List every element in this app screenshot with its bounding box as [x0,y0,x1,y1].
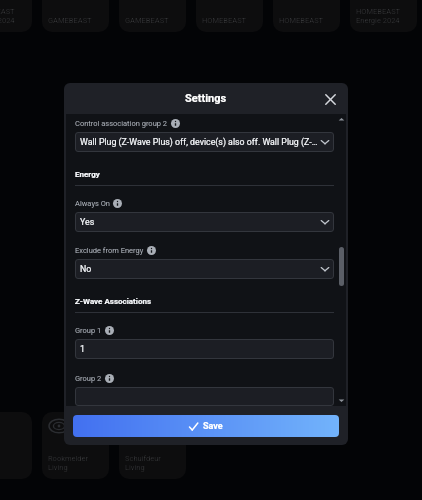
button[interactable]: Close [320,89,340,109]
staticText: Energy [75,170,100,179]
staticText: No [80,264,318,274]
staticText: Save [203,421,223,432]
staticText: Z-Wave Associations [75,297,152,306]
button[interactable]: GAMEBEAST [42,0,109,32]
staticText: Wall Plug (Z-Wave Plus) off, device(s) a… [80,137,318,147]
staticText: Energie 2024 [356,16,400,25]
staticText: Living [48,463,68,472]
staticText: GAMEBEAST [48,16,92,25]
staticText: Energie 2024 [0,16,15,25]
staticText: HOMEBEAST [279,16,324,25]
staticText: HOMEBEAST [356,7,401,16]
button[interactable]: Scroll [337,114,346,406]
staticText: Group 1 [75,326,102,335]
button[interactable]: HOMEBEAST [196,0,263,32]
staticText: GAMEBEAST [0,7,15,16]
button[interactable]: Save [73,415,339,437]
button[interactable] [75,387,334,406]
staticText: Living [125,463,145,472]
staticText: Exclude from Energy [75,246,144,255]
button[interactable]: HOMEBEAST [273,0,340,32]
staticText: 1 [80,344,330,354]
button[interactable]: Wall Plug (Z-Wave Plus) off, device(s) a… [75,132,334,152]
staticText: GAMEBEAST [125,16,169,25]
staticText: Group 2 [75,374,102,383]
button[interactable]: HOMEBEAST [350,0,417,32]
button[interactable]: Rookmelder [42,412,109,479]
staticText: Always On [75,199,110,208]
staticText: Yes [80,217,318,227]
button[interactable]: 1 [75,339,334,359]
staticText: HOMEBEAST [202,16,247,25]
button[interactable]: Yes [75,212,334,232]
staticText: Control association group 2 [75,119,168,128]
button[interactable]: GAMEBEAST [0,0,32,32]
button[interactable]: GAMEBEAST [119,0,186,32]
staticText: Rookmelder [48,454,89,463]
staticText: Settings [185,92,227,105]
button[interactable]: Schuifdeur [119,412,186,479]
button[interactable]: No [75,259,334,279]
staticText: Schuifdeur [125,454,161,463]
